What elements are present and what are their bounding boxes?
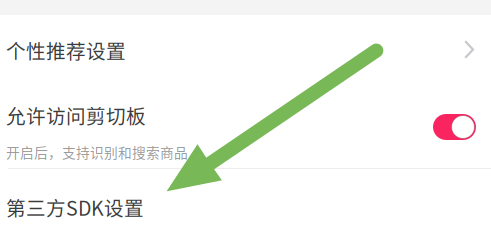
button[interactable]: 第三方SDK设置	[0, 169, 491, 227]
button[interactable]: 允许访问剪切板	[0, 84, 491, 168]
staticText: 个性推荐设置	[6, 36, 126, 64]
staticText: 允许访问剪切板	[6, 101, 146, 129]
staticText: 第三方SDK设置	[6, 193, 144, 221]
staticText: 开启后，支持识别和搜索商品	[6, 142, 188, 162]
button[interactable]: 个性推荐设置	[0, 15, 491, 83]
